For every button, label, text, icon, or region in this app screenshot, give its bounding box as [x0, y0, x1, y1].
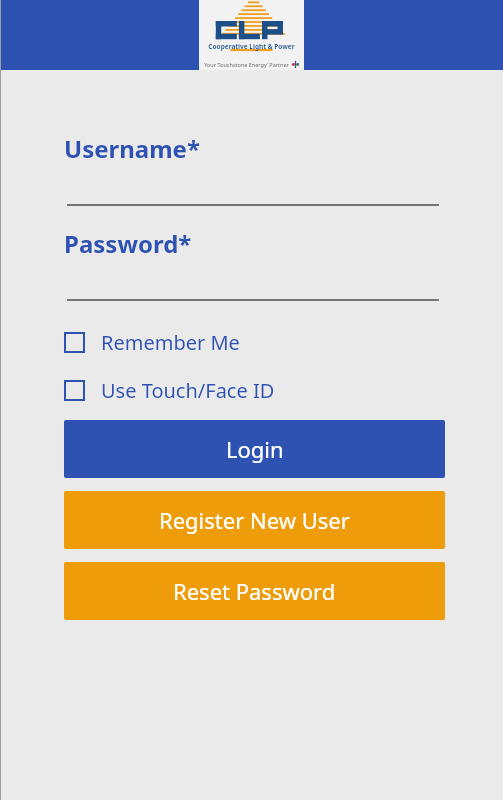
other: Remember Me	[64, 332, 85, 353]
staticText: Username*	[64, 132, 200, 165]
staticText: Password*	[64, 227, 192, 260]
button[interactable]: Register New User	[64, 491, 445, 549]
button[interactable]: Login	[64, 420, 445, 478]
staticText: Login	[226, 434, 284, 464]
staticText: Use Touch/Face ID	[101, 377, 275, 404]
staticText: Your Touchstone Energy’ Partner	[204, 61, 289, 68]
staticText: Register New User	[159, 505, 350, 535]
button[interactable]: Use Touch/Face ID	[64, 371, 275, 409]
staticText: Reset Password	[173, 576, 336, 606]
button[interactable]: Reset Password	[64, 562, 445, 620]
other: Use Touch/Face ID	[64, 380, 85, 401]
staticText: Cooperative Light & Power	[208, 42, 295, 51]
button[interactable]: Remember Me	[64, 323, 240, 361]
staticText: Remember Me	[101, 329, 240, 356]
